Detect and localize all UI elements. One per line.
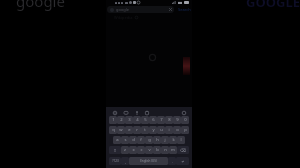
button[interactable]: Stickers: [124, 111, 128, 115]
button[interactable]: ⌫: [177, 146, 189, 154]
staticText: .: [172, 159, 173, 164]
button[interactable]: 3: [125, 116, 133, 124]
button[interactable]: ⇧: [109, 146, 121, 154]
button[interactable]: ↵: [176, 157, 189, 165]
button[interactable]: n: [161, 146, 169, 154]
button[interactable]: 4: [133, 116, 141, 124]
staticText: n: [164, 147, 167, 153]
button[interactable]: t: [141, 126, 149, 134]
staticText: 6: [152, 117, 155, 123]
button[interactable]: 7: [157, 116, 165, 124]
staticText: z: [124, 147, 126, 153]
button[interactable]: i: [165, 126, 173, 134]
button[interactable]: j: [161, 136, 169, 144]
staticText: u: [160, 127, 163, 133]
button[interactable]: l: [177, 136, 185, 144]
button[interactable]: Emoji: [113, 111, 117, 115]
staticText: s: [124, 137, 127, 143]
staticText: Search: [178, 7, 191, 12]
button[interactable]: h: [153, 136, 161, 144]
button[interactable]: ?123: [109, 157, 121, 165]
staticText: 5: [144, 117, 147, 123]
button[interactable]: b: [153, 146, 161, 154]
staticText: m: [171, 147, 175, 153]
staticText: 8: [168, 117, 171, 123]
button[interactable]: Wikipedia: [114, 15, 138, 20]
button[interactable]: m: [169, 146, 177, 154]
staticText: 1: [112, 117, 115, 123]
staticText: e: [128, 127, 131, 133]
staticText: 4: [136, 117, 139, 123]
staticText: f: [140, 137, 142, 143]
staticText: ⌫: [180, 148, 186, 153]
staticText: g: [148, 137, 151, 143]
staticText: 3: [128, 117, 131, 123]
staticText: y: [152, 127, 155, 133]
button[interactable]: q: [109, 126, 117, 134]
button[interactable]: o: [173, 126, 181, 134]
button[interactable]: w: [117, 126, 125, 134]
button[interactable]: 2: [117, 116, 125, 124]
button[interactable]: v: [145, 146, 153, 154]
staticText: ↵: [181, 159, 185, 163]
button[interactable]: e: [125, 126, 133, 134]
button[interactable]: Search: [177, 6, 192, 13]
button[interactable]: u: [157, 126, 165, 134]
button[interactable]: y: [149, 126, 157, 134]
button[interactable]: k: [169, 136, 177, 144]
staticText: r: [136, 127, 138, 133]
staticText: v: [148, 147, 151, 153]
button[interactable]: 5: [141, 116, 149, 124]
button[interactable]: 8: [165, 116, 173, 124]
staticText: o: [176, 127, 179, 133]
button[interactable]: s: [121, 136, 129, 144]
staticText: google: [116, 7, 130, 12]
staticText: 9: [176, 117, 179, 123]
staticText: l: [180, 137, 182, 143]
button[interactable]: c: [137, 146, 145, 154]
staticText: h: [156, 137, 159, 143]
staticText: j: [164, 137, 166, 143]
button[interactable]: a: [113, 136, 121, 144]
button[interactable]: 9: [173, 116, 181, 124]
staticText: b: [156, 147, 159, 153]
staticText: ,: [125, 159, 126, 164]
staticText: 0: [184, 117, 187, 123]
staticText: ⇧: [113, 148, 117, 153]
staticText: 7: [160, 117, 163, 123]
button[interactable]: Settings: [182, 111, 186, 115]
button[interactable]: ,: [121, 157, 129, 165]
button[interactable]: f: [137, 136, 145, 144]
button[interactable]: .: [168, 157, 176, 165]
button[interactable]: 1: [109, 116, 117, 124]
button[interactable]: r: [133, 126, 141, 134]
staticText: google: [16, 0, 65, 11]
staticText: q: [112, 127, 115, 133]
button[interactable]: z: [121, 146, 129, 154]
staticText: p: [184, 127, 187, 133]
button[interactable]: google: [107, 6, 174, 13]
button[interactable]: Voice input: [135, 111, 139, 115]
staticText: GOOGLE: [246, 0, 300, 11]
staticText: x: [132, 147, 135, 153]
staticText: w: [119, 127, 123, 133]
button[interactable]: x: [129, 146, 137, 154]
button[interactable]: p: [181, 126, 189, 134]
staticText: k: [172, 137, 175, 143]
staticText: Wikipedia: [114, 15, 133, 20]
button[interactable]: d: [129, 136, 137, 144]
button[interactable]: English (US): [129, 157, 168, 165]
staticText: t: [144, 127, 146, 133]
staticText: i: [168, 127, 170, 133]
button[interactable]: 6: [149, 116, 157, 124]
button[interactable]: Clipboard: [145, 111, 149, 115]
staticText: ?123: [112, 159, 119, 163]
staticText: 2: [120, 117, 123, 123]
staticText: c: [140, 147, 143, 153]
button[interactable]: 0: [181, 116, 189, 124]
button[interactable]: g: [145, 136, 153, 144]
staticText: a: [116, 137, 119, 143]
staticText: English (US): [140, 159, 157, 163]
staticText: d: [132, 137, 135, 143]
